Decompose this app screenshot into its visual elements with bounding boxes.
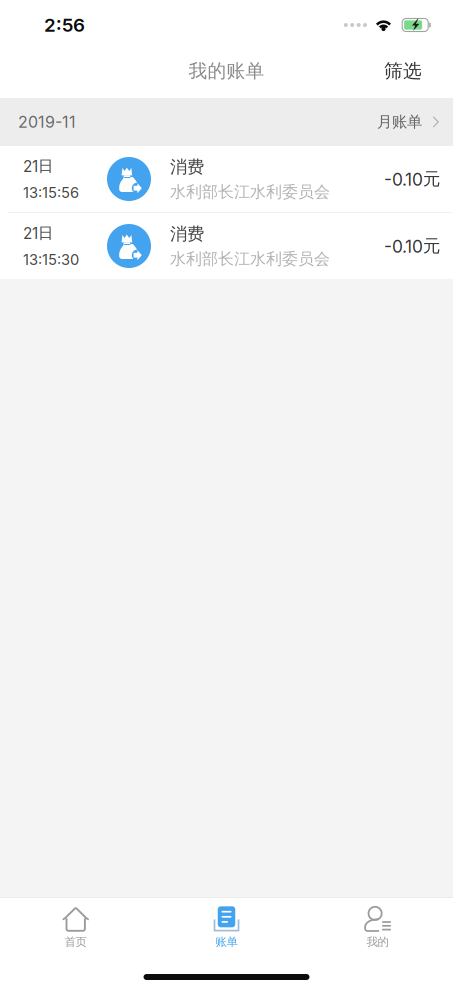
staticText: 我的 [366,935,388,949]
staticText: 13:15:56 [23,184,79,201]
button[interactable]: 筛选 [370,49,436,93]
staticText: 13:15:30 [23,251,79,268]
button[interactable]: 我的 [302,906,453,958]
button[interactable]: 21日 [0,213,453,279]
button[interactable]: 21日 [0,146,453,212]
staticText: 消费 [170,223,204,245]
staticText: 2:56 [44,14,85,36]
button[interactable]: 2019-11 [0,98,453,146]
staticText: 水利部长江水利委员会 [170,182,330,202]
staticText: 账单 [215,935,237,949]
staticText: 首页 [64,935,86,949]
staticText: 21日 [23,223,53,243]
button[interactable]: 首页 [0,906,151,958]
staticText: 月账单 [377,112,422,132]
staticText: -0.10元 [384,235,440,257]
staticText: 消费 [170,156,204,178]
staticText: -0.10元 [384,168,440,190]
button[interactable]: 账单 [151,906,302,958]
staticText: 筛选 [384,59,422,83]
staticText: 水利部长江水利委员会 [170,249,330,269]
staticText: 21日 [23,156,53,176]
staticText: 我的账单 [188,59,264,83]
staticText: 2019-11 [18,112,76,132]
